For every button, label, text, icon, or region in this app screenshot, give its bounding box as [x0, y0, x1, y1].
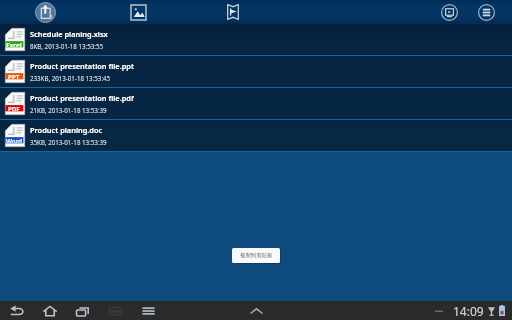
staticText: 35KB, 2013-01-18 13:53:39	[30, 138, 107, 146]
button[interactable]: Menu	[135, 301, 162, 320]
staticText: Word	[6, 137, 23, 143]
button[interactable]: PDF	[0, 88, 512, 119]
button[interactable]: 複製到剪貼板	[232, 248, 280, 263]
button[interactable]: Files	[0, 0, 90, 24]
staticText: PPT	[8, 73, 20, 79]
button[interactable]: Word	[0, 120, 512, 151]
staticText: 14:09	[453, 303, 484, 319]
button[interactable]: Expand status bar	[244, 301, 268, 320]
button[interactable]: Back	[3, 301, 30, 320]
button[interactable]: Excel	[0, 24, 512, 55]
staticText: Product presentation file.ppt	[30, 61, 134, 71]
staticText: PDF	[8, 105, 20, 111]
staticText: 21KB, 2013-01-18 13:53:39	[30, 106, 107, 114]
staticText: 233KB, 2013-01-18 13:53:45	[30, 74, 111, 82]
button[interactable]: Media	[431, 0, 468, 24]
button[interactable]: Bookmarks	[187, 0, 279, 24]
staticText: Excel	[6, 41, 22, 47]
button[interactable]: PPT	[0, 56, 512, 87]
button[interactable]: Home	[36, 301, 63, 320]
button[interactable]: Screenshot	[102, 301, 129, 320]
staticText: Product planing.doc	[30, 125, 103, 135]
staticText: 複製到剪貼板	[240, 252, 273, 259]
staticText: Schedule planing.xlsx	[30, 29, 108, 39]
staticText: 8KB, 2013-01-18 13:53:55	[30, 42, 104, 50]
button[interactable]: Menu	[468, 0, 504, 24]
button[interactable]: Gallery	[90, 0, 187, 24]
staticText: Product presentation file.pdf	[30, 93, 134, 103]
button[interactable]: Recents	[69, 301, 96, 320]
